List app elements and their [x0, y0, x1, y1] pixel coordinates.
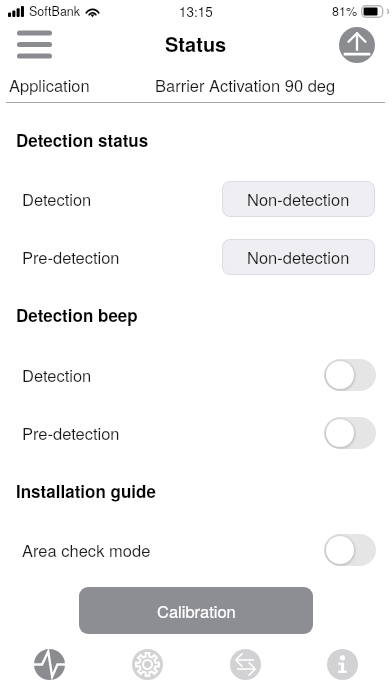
staticText: 81% [332, 2, 358, 20]
staticText: Calibration [157, 599, 236, 623]
button[interactable]: Non-detection [222, 181, 375, 217]
staticText: Detection beep [16, 303, 138, 327]
staticText: SoftBank [29, 2, 81, 20]
staticText: Detection [22, 187, 92, 211]
button[interactable]: Status [19, 638, 79, 690]
staticText: Detection status [16, 128, 149, 152]
button[interactable]: Detection switch [324, 359, 376, 391]
staticText: Pre-detection [22, 245, 120, 269]
button[interactable]: Pre-detection switch [324, 417, 376, 449]
staticText: Non-detection [247, 245, 350, 269]
button[interactable]: Non-detection [222, 239, 375, 275]
button[interactable]: Calibration [79, 587, 313, 634]
button[interactable]: Upload [339, 27, 375, 63]
button[interactable]: Transfer [215, 638, 275, 690]
staticText: Application [9, 73, 90, 97]
staticText: Detection [22, 363, 92, 387]
staticText: Barrier Activation 90 deg [155, 73, 336, 97]
button[interactable]: Settings [117, 638, 177, 690]
staticText: Pre-detection [22, 421, 120, 445]
staticText: Area check mode [22, 538, 151, 562]
button[interactable]: Info [312, 638, 372, 690]
staticText: Installation guide [16, 479, 156, 503]
staticText: 13:15 [179, 2, 213, 21]
staticText: Status [165, 29, 227, 58]
button[interactable]: Area check mode switch [324, 534, 376, 566]
staticText: Non-detection [247, 187, 350, 211]
button[interactable]: Menu [12, 26, 57, 64]
